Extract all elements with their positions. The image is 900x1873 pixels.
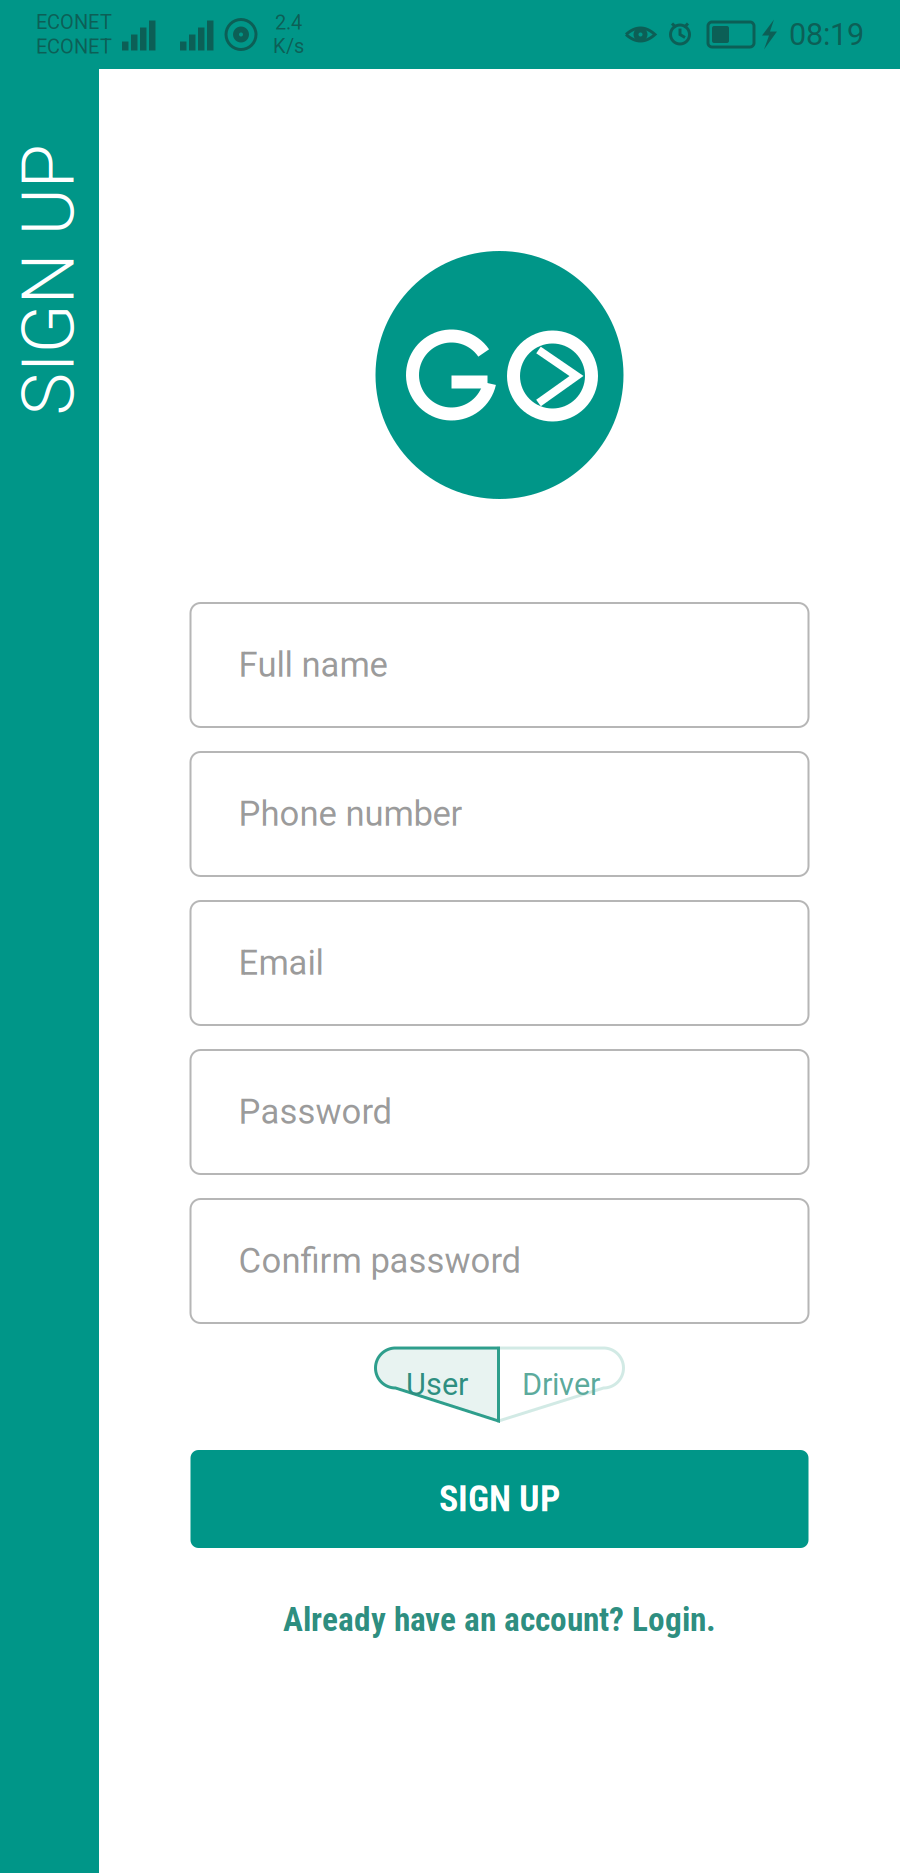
staticText: 2.4 <box>275 11 302 34</box>
staticText: 08:19 <box>789 16 864 52</box>
button[interactable]: Full name <box>190 603 808 727</box>
staticText: Already have an account? Login. <box>283 1600 716 1639</box>
staticText: Password <box>238 1092 392 1132</box>
staticText: Driver <box>522 1366 600 1402</box>
button[interactable]: User <box>375 1348 623 1421</box>
staticText: Email <box>238 943 323 983</box>
staticText: ECONET <box>36 11 112 34</box>
staticText: SIGN UP <box>0 238 184 322</box>
button[interactable]: Email <box>190 901 808 1025</box>
staticText: K/s <box>273 34 304 58</box>
button[interactable]: SIGN UP <box>190 1450 808 1548</box>
staticText: ECONET <box>36 35 112 58</box>
staticText: SIGN UP <box>439 1478 560 1520</box>
button[interactable]: Phone number <box>190 752 808 876</box>
staticText: Phone number <box>238 794 462 834</box>
button[interactable]: Confirm password <box>190 1199 808 1323</box>
staticText: User <box>406 1366 468 1402</box>
staticText: Full name <box>238 645 387 685</box>
button[interactable]: Password <box>190 1050 808 1174</box>
staticText: Confirm password <box>238 1241 521 1281</box>
button[interactable]: Already have an account? Login. <box>283 1600 716 1639</box>
button[interactable]: Driver <box>375 1348 623 1421</box>
